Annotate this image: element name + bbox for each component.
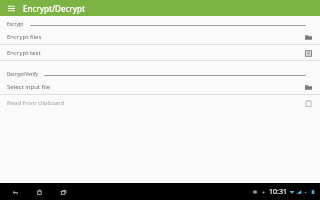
button[interactable]: Open navigation drawer <box>5 2 18 15</box>
button[interactable]: Recent apps <box>56 185 70 199</box>
staticText: Encrypt <box>7 21 24 27</box>
button[interactable]: Select input file <box>0 79 320 94</box>
staticText: Select input file <box>7 83 303 91</box>
staticText: Read from clipboard <box>7 99 303 107</box>
button[interactable]: Back <box>8 185 22 199</box>
button[interactable]: Encrypt text <box>0 45 320 60</box>
staticText: Encrypt files <box>7 33 303 41</box>
staticText: Encrypt/Decrypt <box>23 3 86 14</box>
staticText: Decrypt/Verify <box>7 71 38 77</box>
button[interactable]: Read from clipboard <box>0 95 320 110</box>
button[interactable]: Encrypt files <box>0 29 320 44</box>
staticText: 10:31 <box>269 187 287 197</box>
button[interactable]: Home <box>32 185 46 199</box>
staticText: Encrypt text <box>7 49 303 57</box>
